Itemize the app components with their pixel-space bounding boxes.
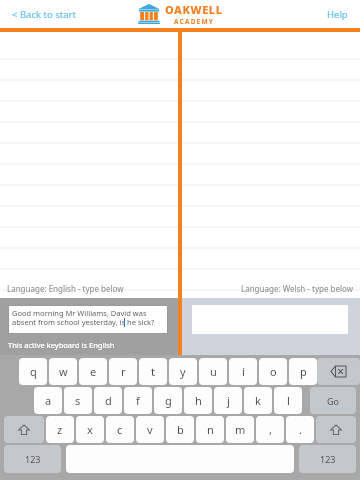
button[interactable]: q — [19, 358, 47, 385]
button[interactable]: y — [169, 358, 197, 385]
staticText: 123 — [25, 453, 41, 465]
staticText: f — [136, 393, 140, 408]
staticText: e — [90, 364, 97, 379]
button[interactable]: 123 — [299, 445, 356, 473]
staticText: k — [255, 393, 261, 408]
staticText: Help — [327, 8, 348, 21]
button[interactable]: f — [124, 387, 152, 414]
staticText: i — [242, 364, 245, 379]
button[interactable]: Space — [66, 445, 294, 473]
button[interactable]: Shift — [4, 416, 44, 443]
button[interactable]: u — [199, 358, 227, 385]
staticText: Good morning Mr Williams, David was abse… — [12, 308, 164, 328]
button[interactable]: Good morning Mr Williams, David was abse… — [8, 305, 168, 334]
staticText: < Back to start — [12, 8, 76, 21]
button[interactable]: x — [76, 416, 104, 443]
staticText: ACADEMY — [174, 17, 215, 26]
staticText: . — [299, 422, 302, 437]
button[interactable]: j — [214, 387, 242, 414]
button[interactable]: w — [49, 358, 77, 385]
staticText: n — [207, 422, 214, 437]
button[interactable]: e — [79, 358, 107, 385]
button[interactable]: Backspace — [317, 358, 360, 385]
staticText: m — [235, 422, 246, 437]
button[interactable]: Shift — [316, 416, 356, 443]
button[interactable]: n — [196, 416, 224, 443]
staticText: Language: Welsh - type below — [241, 283, 353, 294]
staticText: s — [75, 393, 81, 408]
staticText: o — [270, 364, 277, 379]
staticText: x — [87, 422, 93, 437]
button[interactable]: Go — [310, 387, 356, 414]
button[interactable]: s — [64, 387, 92, 414]
staticText: r — [121, 364, 126, 379]
button[interactable]: k — [244, 387, 272, 414]
button[interactable]: , — [256, 416, 284, 443]
staticText: g — [165, 393, 172, 408]
button[interactable]: < Back to start — [6, 4, 82, 25]
staticText: Go — [327, 395, 339, 407]
staticText: d — [105, 393, 112, 408]
button[interactable]: h — [184, 387, 212, 414]
button[interactable]: m — [226, 416, 254, 443]
button[interactable]: Help — [321, 4, 354, 25]
staticText: 123 — [320, 453, 336, 465]
button[interactable]: b — [166, 416, 194, 443]
staticText: This active keyboard is English — [8, 340, 115, 350]
button[interactable]: i — [229, 358, 257, 385]
staticText: a — [45, 393, 52, 408]
staticText: w — [59, 364, 68, 379]
staticText: y — [180, 364, 186, 379]
staticText: l — [287, 393, 290, 408]
button[interactable]: . — [286, 416, 314, 443]
staticText: Language: English - type below — [7, 283, 124, 294]
button[interactable]: a — [34, 387, 62, 414]
staticText: p — [300, 364, 307, 379]
staticText: b — [177, 422, 184, 437]
button[interactable]: v — [136, 416, 164, 443]
button[interactable]: t — [139, 358, 167, 385]
staticText: q — [30, 364, 37, 379]
button[interactable]: o — [259, 358, 287, 385]
staticText: v — [147, 422, 153, 437]
staticText: , — [269, 422, 272, 437]
button[interactable]: 123 — [4, 445, 61, 473]
staticText: z — [57, 422, 63, 437]
button[interactable]: l — [274, 387, 302, 414]
staticText: OAKWELL — [165, 2, 223, 17]
button[interactable]: r — [109, 358, 137, 385]
staticText: t — [151, 364, 155, 379]
button[interactable]: c — [106, 416, 134, 443]
button[interactable]: g — [154, 387, 182, 414]
button[interactable]: z — [46, 416, 74, 443]
button[interactable]: d — [94, 387, 122, 414]
staticText: u — [210, 364, 217, 379]
staticText: j — [227, 393, 230, 408]
button[interactable]: p — [289, 358, 317, 385]
staticText: c — [117, 422, 123, 437]
staticText: h — [195, 393, 202, 408]
